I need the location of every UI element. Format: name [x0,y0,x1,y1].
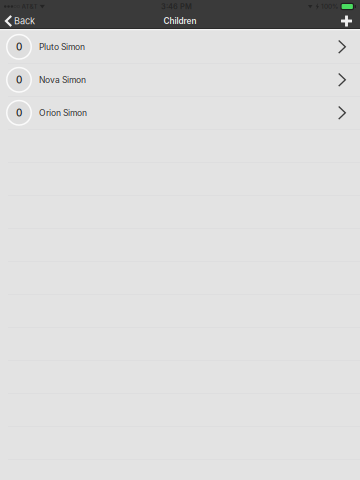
staticText: 3:46 PM [161,2,192,11]
staticText: 0 [16,74,22,86]
button[interactable]: 0 [0,97,360,130]
staticText: Pluto Simon [39,42,85,52]
button[interactable]: Add [333,13,360,29]
button[interactable]: 0 [0,64,360,97]
staticText: Children [163,16,196,26]
button[interactable]: 0 [0,31,360,64]
staticText: Nova Simon [39,75,86,85]
staticText: 0 [16,41,22,53]
button[interactable]: Back [0,13,42,29]
staticText: Orion Simon [39,108,87,118]
staticText: 100% [321,3,338,10]
staticText: 0 [16,107,22,119]
staticText: AT&T [21,3,37,10]
staticText: Back [14,15,35,26]
